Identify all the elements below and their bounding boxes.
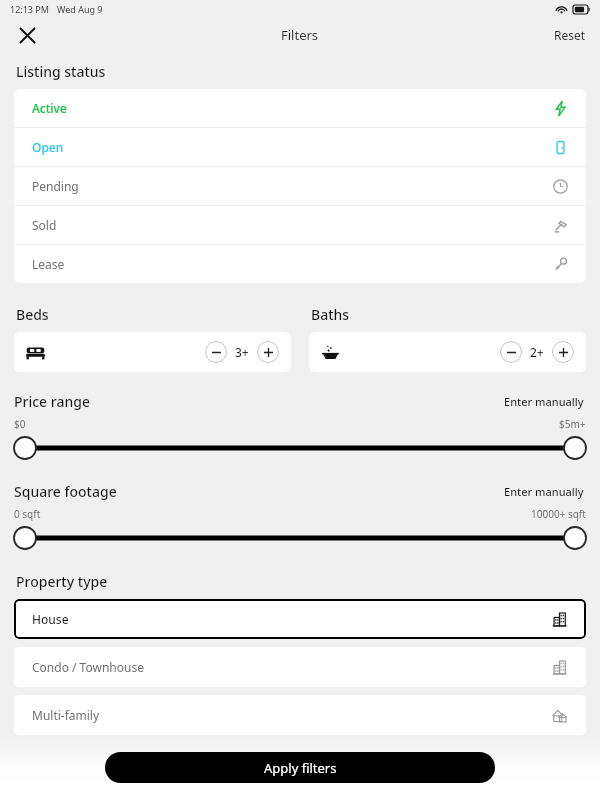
staticText: Property type (16, 572, 108, 591)
staticText: Open (32, 139, 64, 155)
staticText: 0 sqft (14, 507, 41, 521)
staticText: 3+ (235, 344, 249, 360)
button[interactable]: Lease (14, 245, 586, 283)
staticText: Enter manually (504, 394, 584, 409)
staticText: Enter manually (504, 484, 584, 499)
staticText: Filters (281, 26, 319, 44)
button[interactable]: Enter manually (502, 392, 586, 411)
staticText: 10000+ sqft (531, 507, 586, 521)
staticText: Multi-family (32, 707, 100, 723)
staticText: House (32, 611, 69, 627)
staticText: Listing status (16, 62, 106, 81)
staticText: Condo / Townhouse (32, 659, 144, 675)
button[interactable]: Sold (14, 206, 586, 244)
staticText: $5m+ (559, 417, 586, 431)
button[interactable]: Condo / Townhouse (14, 647, 586, 687)
button[interactable]: Reset (550, 23, 590, 47)
staticText: Baths (311, 305, 350, 324)
staticText: Apply filters (264, 759, 337, 777)
button[interactable]: Active (14, 89, 586, 127)
staticText: 2+ (530, 344, 544, 360)
staticText: 12:13 PM (10, 3, 49, 15)
button[interactable]: Close (12, 20, 42, 50)
button[interactable]: Increase (257, 341, 279, 363)
button[interactable]: Increase (552, 341, 574, 363)
staticText: Sold (32, 217, 57, 233)
button[interactable]: Pending (14, 167, 586, 205)
staticText: Beds (16, 305, 49, 324)
staticText: $0 (14, 417, 26, 431)
staticText: Pending (32, 178, 79, 194)
button[interactable]: House (14, 599, 586, 639)
button[interactable]: Decrease (500, 341, 522, 363)
button[interactable]: Price range range slider (14, 436, 586, 460)
button[interactable]: Apply filters (105, 752, 495, 783)
staticText: Lease (32, 256, 65, 272)
button[interactable]: Square footage range slider (14, 526, 586, 550)
button[interactable]: Open (14, 128, 586, 166)
staticText: Price range (14, 392, 90, 411)
staticText: Wed Aug 9 (57, 3, 103, 15)
staticText: Square footage (14, 482, 117, 501)
staticText: Reset (554, 27, 586, 43)
button[interactable]: Decrease (205, 341, 227, 363)
button[interactable]: Enter manually (502, 482, 586, 501)
button[interactable]: Multi-family (14, 695, 586, 735)
staticText: Active (32, 100, 67, 116)
